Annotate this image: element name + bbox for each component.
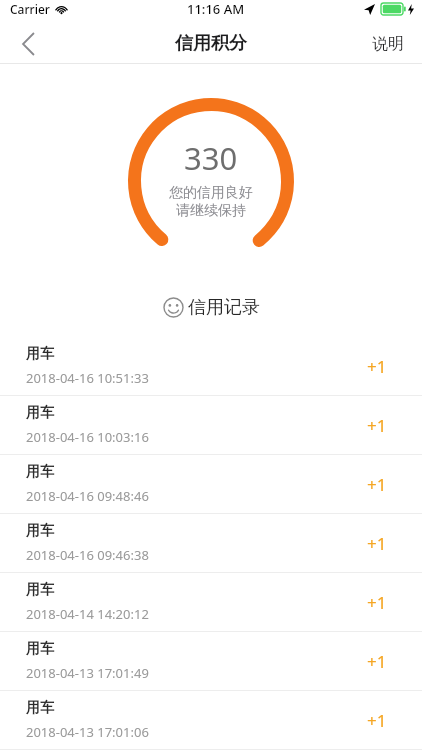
staticText: +1: [367, 709, 387, 732]
button[interactable]: 用车: [0, 514, 422, 572]
button[interactable]: 用车: [0, 632, 422, 690]
staticText: 2018-04-16 09:46:38: [26, 546, 149, 564]
staticText: Carrier: [10, 1, 50, 17]
button[interactable]: 用车: [0, 455, 422, 513]
staticText: 用车: [26, 345, 54, 363]
staticText: 330: [184, 137, 238, 179]
staticText: 用车: [26, 581, 54, 599]
staticText: 您的信用良好: [169, 184, 253, 202]
staticText: +1: [367, 355, 387, 378]
staticText: 2018-04-13 17:01:06: [26, 723, 149, 741]
staticText: 11:16 AM: [187, 0, 245, 18]
staticText: 2018-04-16 10:51:33: [26, 369, 149, 387]
staticText: +1: [367, 414, 387, 437]
staticText: 请继续保持: [176, 202, 246, 220]
staticText: 2018-04-16 10:03:16: [26, 428, 149, 446]
staticText: 2018-04-16 09:48:46: [26, 487, 149, 505]
staticText: 用车: [26, 463, 54, 481]
staticText: +1: [367, 473, 387, 496]
staticText: +1: [367, 532, 387, 555]
button[interactable]: 用车: [0, 337, 422, 395]
staticText: +1: [367, 591, 387, 614]
staticText: +1: [367, 650, 387, 673]
button[interactable]: 说明: [372, 34, 404, 54]
staticText: 信用记录: [188, 296, 260, 319]
staticText: 用车: [26, 522, 54, 540]
button[interactable]: Back: [0, 24, 56, 63]
button[interactable]: 用车: [0, 396, 422, 454]
staticText: 用车: [26, 404, 54, 422]
staticText: 说明: [372, 34, 404, 54]
button[interactable]: 用车: [0, 691, 422, 749]
staticText: 信用积分: [175, 32, 247, 55]
staticText: 2018-04-13 17:01:49: [26, 664, 149, 682]
staticText: 用车: [26, 699, 54, 717]
staticText: 2018-04-14 14:20:12: [26, 605, 149, 623]
staticText: 用车: [26, 640, 54, 658]
button[interactable]: 用车: [0, 573, 422, 631]
